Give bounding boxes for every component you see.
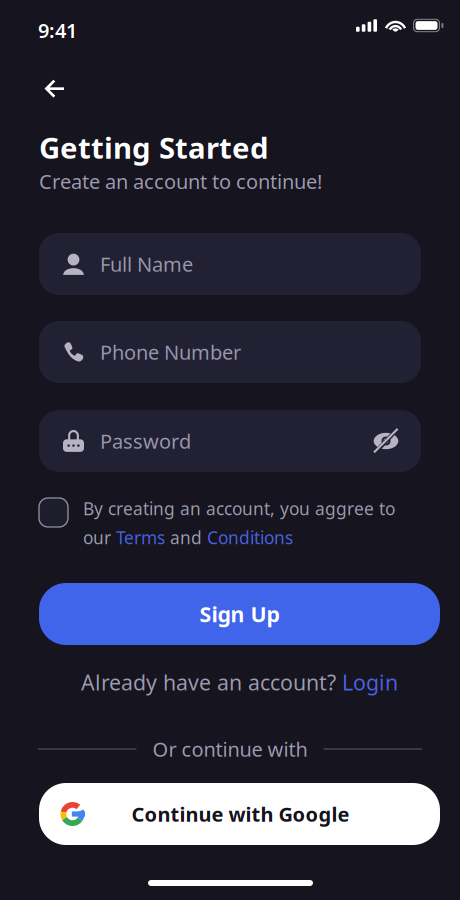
- button[interactable]: Continue with Google: [39, 783, 440, 845]
- staticText: Phone Number: [100, 339, 241, 365]
- staticText: Already have an account?: [81, 668, 342, 696]
- staticText: Sign Up: [199, 600, 279, 628]
- button[interactable]: Terms: [116, 526, 165, 549]
- staticText: Full Name: [100, 251, 193, 277]
- staticText: Terms: [116, 526, 165, 549]
- button[interactable]: Sign Up: [39, 583, 440, 645]
- staticText: Or continue with: [152, 736, 307, 762]
- staticText: Conditions: [207, 526, 293, 549]
- staticText: our: [83, 526, 116, 549]
- staticText: 9:41: [38, 17, 77, 44]
- button[interactable]: Login: [342, 668, 398, 696]
- staticText: By creating an account, you aggree to: [83, 497, 395, 520]
- staticText: Getting Started: [39, 128, 269, 167]
- staticText: and: [165, 526, 207, 549]
- button[interactable]: Conditions: [207, 526, 293, 549]
- button[interactable]: Agree to terms and conditions: [39, 498, 68, 527]
- staticText: Create an account to continue!: [39, 168, 322, 195]
- staticText: Login: [342, 668, 398, 696]
- button[interactable]: Back: [33, 68, 75, 109]
- staticText: Continue with Google: [131, 801, 349, 827]
- staticText: Password: [100, 428, 191, 454]
